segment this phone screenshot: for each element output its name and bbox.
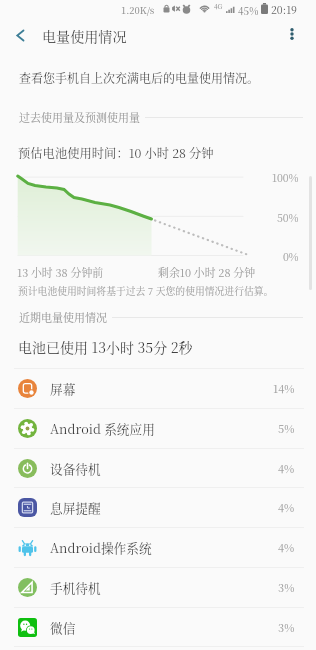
- staticText: Android 系统应用: [50, 419, 155, 437]
- staticText: 手机待机: [50, 578, 101, 596]
- staticText: 近期电量使用情况: [19, 309, 107, 325]
- staticText: 100%: [272, 170, 299, 185]
- button[interactable]: 设备待机: [0, 448, 316, 488]
- staticText: 50%: [277, 210, 299, 225]
- staticText: 4%: [278, 539, 295, 555]
- staticText: 微信: [50, 618, 76, 636]
- staticText: 设备待机: [50, 459, 101, 477]
- button[interactable]: Android操作系统: [0, 527, 316, 567]
- staticText: 3%: [278, 619, 295, 635]
- staticText: 电池已使用 13小时 35分 2秒: [18, 337, 193, 357]
- staticText: 20:19: [271, 2, 297, 17]
- button[interactable]: More options: [283, 25, 301, 43]
- staticText: Android操作系统: [50, 538, 152, 556]
- staticText: 电量使用情况: [42, 26, 127, 46]
- staticText: 过去使用量及预测使用量: [19, 109, 140, 125]
- button[interactable]: Back: [9, 24, 32, 47]
- staticText: 剩余10 小时 28 分钟: [158, 264, 256, 280]
- staticText: 4%: [278, 499, 295, 515]
- staticText: 屏幕: [50, 379, 76, 397]
- staticText: 45%: [238, 3, 259, 17]
- staticText: 0%: [283, 249, 299, 264]
- button[interactable]: 微信: [0, 607, 316, 647]
- staticText: 查看您手机自上次充满电后的电量使用情况。: [19, 69, 260, 86]
- button[interactable]: 息屏提醒: [0, 487, 316, 527]
- staticText: 预估电池使用时间：10 小时 28 分钟: [18, 144, 214, 162]
- staticText: 预计电池使用时间将基于过去 7 天您的使用情况进行估算。: [18, 284, 274, 298]
- staticText: 1.20K/s: [121, 3, 155, 17]
- staticText: 14%: [273, 380, 295, 396]
- button[interactable]: 手机待机: [0, 567, 316, 607]
- staticText: 3%: [278, 579, 295, 595]
- button[interactable]: 屏幕: [0, 368, 316, 408]
- staticText: 4%: [278, 460, 295, 476]
- staticText: 4G: [214, 2, 223, 11]
- staticText: 13 小时 38 分钟前: [17, 264, 104, 280]
- button[interactable]: Android 系统应用: [0, 408, 316, 448]
- staticText: 5%: [278, 420, 295, 436]
- staticText: 息屏提醒: [50, 498, 101, 516]
